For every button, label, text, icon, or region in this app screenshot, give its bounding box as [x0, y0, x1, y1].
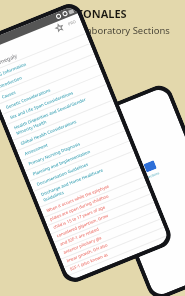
button[interactable]: Assessment: [17, 111, 121, 161]
staticText: When it occurs while the epiphyse: [46, 183, 110, 214]
staticText: RATIONALES: [58, 6, 127, 21]
staticText: Introduction: [0, 74, 23, 90]
button[interactable]: Global Health Considerations: [13, 100, 117, 151]
button[interactable]: Introduction: [0, 44, 94, 95]
staticText: Assessment: [23, 141, 49, 156]
staticText: Causes: [0, 89, 17, 100]
staticText: child is 15 to 17 years of age: [52, 204, 107, 231]
staticText: Sex and Life Span Considerations: [9, 89, 74, 120]
button[interactable]: PRO: [67, 19, 77, 27]
button[interactable]: Favorite: [54, 22, 65, 34]
button[interactable]: Genetic Considerations: [0, 64, 103, 115]
button[interactable]: DRG Information: [0, 34, 90, 84]
button[interactable]: Planning and Implementation: [25, 131, 130, 182]
staticText: Documentation Guidelines: [36, 161, 89, 187]
staticText: PRO: [67, 19, 77, 27]
button[interactable]: Documentation Guidelines: [29, 141, 134, 192]
staticText: Acromegaly: [0, 51, 18, 70]
staticText: Primary Nursing Diagnosis: [27, 140, 81, 167]
button[interactable]: Discharge and Home Healthcare Guidelines: [33, 151, 140, 208]
staticText: Global Health Considerations: [19, 118, 77, 146]
staticText: and IGF-1 are related: [59, 226, 100, 248]
button[interactable]: Primary Nursing Diagnosis: [21, 121, 125, 172]
button[interactable]: Sections: [83, 86, 185, 296]
staticText: Sections: [146, 170, 160, 180]
staticText: considered gigantism. Grow: [56, 213, 110, 239]
staticText: Discharge and Home Healthcare Guidelines: [40, 166, 106, 203]
staticText: Medications & Laboratory Sections: [15, 24, 170, 37]
staticText: anterior pituitary gla: [62, 235, 103, 256]
staticText: Planning and Implementation: [32, 148, 91, 177]
staticText: DRG Information: [0, 61, 27, 79]
button[interactable]: Causes: [0, 54, 98, 105]
button[interactable]: Sex and Life Span Considerations: [2, 75, 107, 125]
staticText: IGF-1 (also known as: [69, 252, 110, 273]
staticText: linear growth. GH also: [66, 242, 109, 264]
staticText: plates are open during childhoo: [49, 193, 110, 223]
button[interactable]: Health Disparities and Sexual/Gender Min…: [7, 85, 113, 141]
staticText: Health Disparities and Sexual/Gender Min…: [13, 96, 89, 136]
button[interactable]: 7:38: [0, 5, 170, 281]
staticText: Genetic Considerations: [5, 86, 51, 110]
